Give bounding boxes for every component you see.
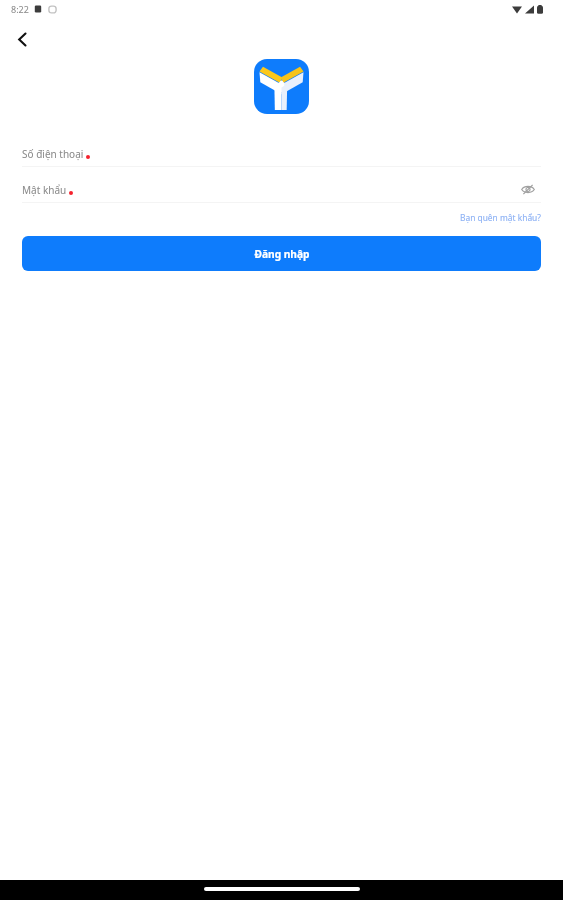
button[interactable]: Show password [518,179,538,199]
button[interactable]: Bạn quên mật khẩu? [460,212,541,223]
button[interactable]: Đăng nhập [22,236,541,271]
staticText: Mật khẩu [22,183,69,197]
button[interactable]: Số điện thoại [22,140,541,166]
staticText: Đăng nhập [254,247,310,261]
staticText: Số điện thoại [22,147,86,161]
button[interactable]: Mật khẩu [22,167,541,202]
button[interactable]: Back [10,27,34,51]
staticText: Bạn quên mật khẩu? [460,212,541,223]
staticText: 8:22 [11,3,29,15]
